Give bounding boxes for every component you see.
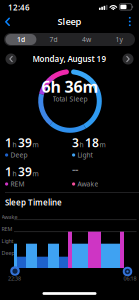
staticText: 1y: [116, 35, 123, 44]
staticText: 39: [18, 134, 32, 150]
staticText: Sleep Timeline: [5, 197, 62, 208]
button[interactable]: [0, 13, 16, 31]
staticText: 7d: [50, 35, 58, 44]
button[interactable]: 4w: [70, 33, 103, 46]
staticText: 22:38: [8, 275, 21, 282]
button[interactable]: 1y: [103, 33, 135, 46]
staticText: 6h 36m: [41, 76, 98, 97]
staticText: m: [33, 169, 39, 178]
button[interactable]: [122, 53, 134, 65]
staticText: Light: [77, 151, 92, 159]
button[interactable]: [5, 53, 17, 65]
staticText: Total Sleep: [52, 95, 87, 103]
staticText: REM: [1, 225, 12, 233]
staticText: 1: [5, 163, 12, 179]
staticText: m: [100, 140, 106, 149]
staticText: 4w: [82, 35, 91, 44]
staticText: h: [13, 169, 17, 178]
staticText: Monday, August 19: [32, 54, 106, 64]
staticText: Deep: [1, 249, 14, 257]
staticText: m: [33, 140, 39, 149]
staticText: h: [80, 140, 84, 149]
staticText: 1d: [17, 35, 25, 44]
staticText: 3: [72, 134, 79, 150]
staticText: REM: [10, 180, 24, 188]
staticText: 18: [85, 134, 99, 150]
staticText: Awake: [1, 213, 17, 221]
button[interactable]: [123, 13, 137, 29]
staticText: Deep: [10, 151, 27, 159]
staticText: 39: [18, 163, 32, 179]
staticText: Light: [1, 237, 13, 245]
staticText: 12:46: [8, 2, 30, 13]
staticText: 1: [5, 134, 12, 150]
button[interactable]: 7d: [37, 33, 70, 46]
staticText: --: [72, 162, 78, 177]
staticText: Awake: [77, 180, 98, 188]
staticText: 06:18: [123, 275, 136, 282]
button[interactable]: 1d: [4, 33, 37, 46]
staticText: h: [13, 140, 17, 149]
staticText: Sleep: [57, 15, 81, 28]
